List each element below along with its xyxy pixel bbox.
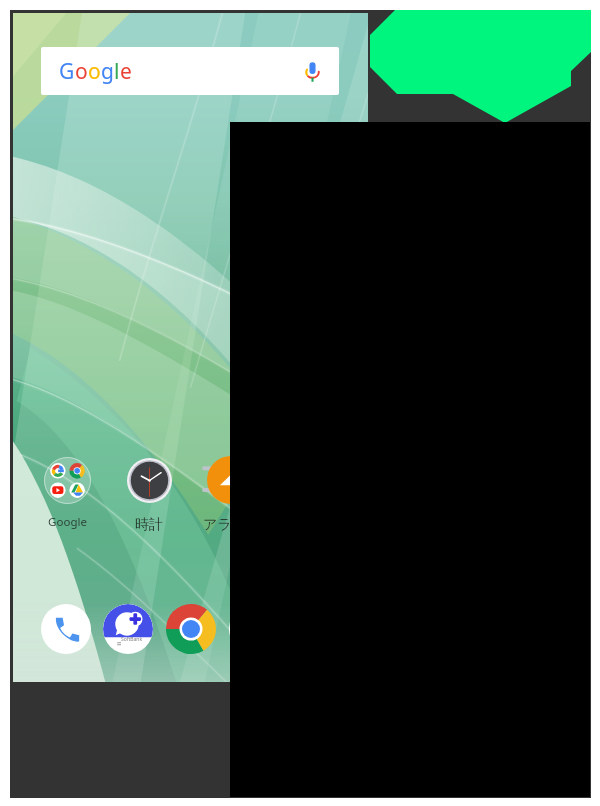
staticText: アラーム — [203, 516, 260, 534]
staticText: Google — [48, 514, 87, 530]
staticText: SoftBank — [121, 636, 143, 643]
button[interactable]: G — [41, 47, 339, 95]
other: SoftBank message — [103, 604, 153, 654]
button[interactable] — [226, 601, 282, 657]
staticText: o — [75, 57, 88, 86]
staticText: l — [114, 57, 120, 86]
button[interactable]: SoftBank message — [100, 601, 156, 657]
button[interactable]: Google — [33, 456, 101, 530]
staticText: 時計 — [135, 516, 163, 534]
other: Chrome — [166, 604, 216, 654]
button[interactable]: アラーム — [197, 456, 265, 534]
staticText: o — [88, 57, 101, 86]
staticText: e — [120, 57, 132, 86]
button[interactable]: Voice search — [302, 61, 323, 82]
button[interactable]: Phone — [38, 601, 94, 657]
button[interactable]: Chrome — [163, 601, 219, 657]
staticText: g — [101, 57, 114, 86]
staticText: G — [59, 57, 75, 86]
button[interactable]: 時計 — [115, 456, 183, 534]
other: Phone — [41, 604, 91, 654]
